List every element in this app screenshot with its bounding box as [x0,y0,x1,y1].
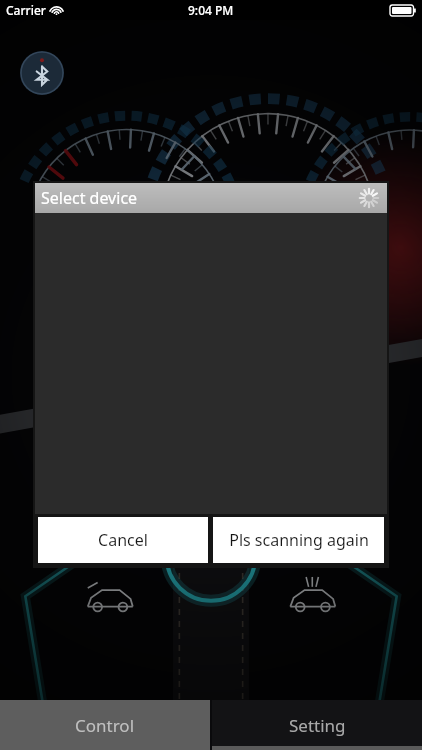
button[interactable]: Setting [212,700,422,750]
staticText: 9:04 PM [188,2,234,18]
button[interactable]: Cancel [38,517,208,563]
staticText: Select device [41,187,138,209]
button[interactable]: Pls scanning again [213,517,384,563]
staticText: Carrier [6,2,46,18]
staticText: Cancel [98,529,148,551]
button[interactable]: Control [0,700,210,750]
staticText: Pls scanning again [229,529,369,551]
staticText: Setting [289,714,346,737]
button[interactable]: Bluetooth [20,51,64,95]
staticText: Control [75,714,135,737]
